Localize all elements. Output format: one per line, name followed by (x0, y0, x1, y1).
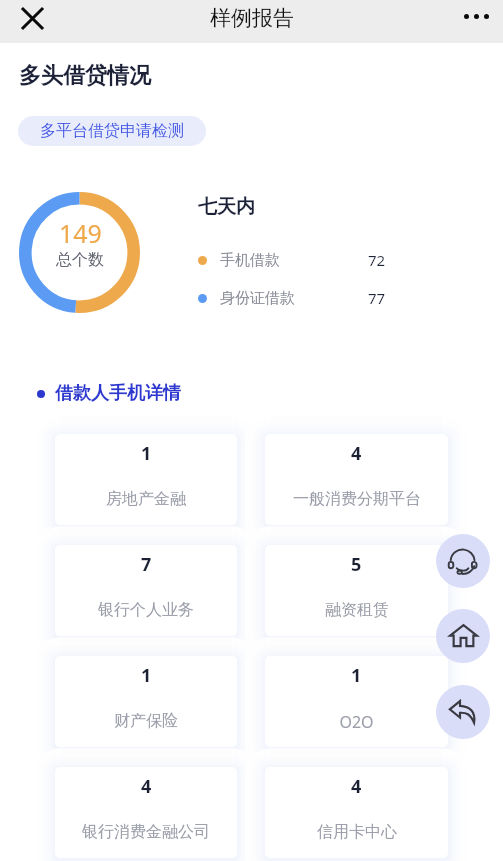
staticText: 手机借款 (220, 251, 280, 270)
button[interactable]: 7 (55, 545, 237, 636)
button[interactable]: 1 (55, 656, 237, 747)
button[interactable]: 1 (265, 656, 448, 747)
button[interactable]: 4 (265, 434, 448, 525)
staticText: 总个数 (56, 250, 104, 270)
staticText: 多平台借贷申请检测 (40, 121, 184, 141)
staticText: 融资租赁 (325, 600, 389, 620)
staticText: 7 (141, 552, 152, 577)
button[interactable]: 多平台借贷申请检测 (18, 116, 206, 146)
staticText: 房地产金融 (106, 489, 186, 509)
staticText: 72 (368, 250, 386, 270)
staticText: 1 (351, 663, 362, 688)
button[interactable]: 1 (55, 434, 237, 525)
staticText: 一般消费分期平台 (293, 489, 421, 509)
staticText: O2O (339, 711, 374, 733)
staticText: 样例报告 (210, 5, 294, 31)
staticText: 1 (141, 441, 152, 466)
button[interactable]: Customer service (436, 534, 490, 588)
staticText: 借款人手机详情 (55, 382, 181, 405)
button[interactable]: 5 (265, 545, 448, 636)
button[interactable]: 4 (265, 767, 448, 858)
staticText: 七天内 (198, 195, 255, 219)
staticText: 5 (351, 552, 362, 577)
staticText: 银行消费金融公司 (82, 822, 210, 842)
staticText: 1 (141, 663, 152, 688)
staticText: 149 (59, 216, 102, 250)
button[interactable]: Back (436, 685, 490, 739)
button[interactable]: 4 (55, 767, 237, 858)
staticText: 4 (351, 774, 362, 799)
staticText: 财产保险 (114, 711, 178, 731)
button[interactable]: Close (13, 0, 51, 37)
staticText: 银行个人业务 (98, 600, 194, 620)
staticText: 信用卡中心 (317, 822, 397, 842)
staticText: 身份证借款 (220, 289, 295, 308)
button[interactable]: Home (436, 609, 490, 663)
staticText: 4 (351, 441, 362, 466)
staticText: 多头借贷情况 (19, 62, 151, 90)
button[interactable]: More options (452, 0, 500, 38)
staticText: 77 (368, 288, 386, 308)
staticText: 4 (141, 774, 152, 799)
